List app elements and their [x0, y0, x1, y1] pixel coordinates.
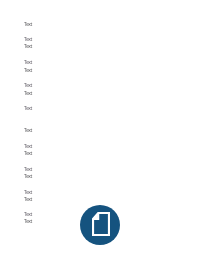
staticText: Text — [24, 43, 32, 50]
staticText: Text — [24, 105, 32, 112]
button[interactable]: Text — [0, 63, 200, 86]
staticText: Text — [24, 67, 32, 74]
staticText: Text — [24, 173, 32, 180]
button[interactable]: Create new document — [80, 205, 120, 245]
staticText: Text — [24, 21, 32, 28]
staticText: Text — [24, 36, 32, 43]
button[interactable]: Text — [0, 86, 200, 116]
button[interactable]: Text — [0, 146, 200, 170]
staticText: Text — [24, 218, 32, 225]
staticText: Text — [24, 211, 32, 218]
staticText: Text — [24, 166, 32, 173]
button[interactable]: Text — [0, 170, 200, 192]
button[interactable]: Text — [0, 116, 200, 146]
staticText: Text — [24, 82, 32, 89]
staticText: Text — [24, 59, 32, 66]
staticText: Text — [24, 143, 32, 150]
staticText: Text — [24, 150, 32, 157]
button[interactable]: Text — [0, 16, 200, 39]
staticText: Text — [24, 127, 32, 134]
staticText: Text — [24, 90, 32, 97]
button[interactable]: Text — [0, 39, 200, 63]
button[interactable]: Text — [0, 192, 200, 215]
button[interactable]: Text — [0, 215, 200, 235]
staticText: Text — [24, 196, 32, 203]
staticText: Text — [24, 189, 32, 196]
